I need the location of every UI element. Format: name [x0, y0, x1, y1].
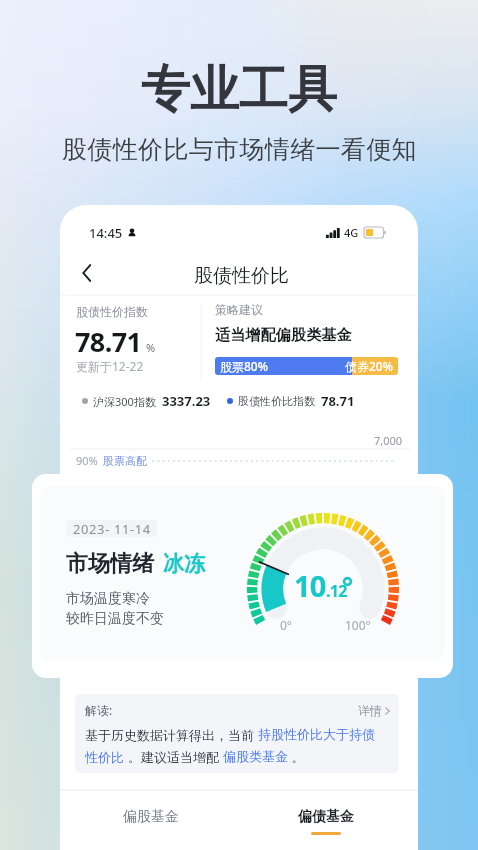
staticText: 股票80% [220, 358, 268, 374]
staticText: 股债性价指数 [76, 304, 148, 319]
staticText: % [146, 340, 156, 355]
staticText: 详情 [358, 703, 382, 718]
button[interactable]: 详情 [358, 703, 390, 718]
button[interactable]: Back [70, 257, 104, 289]
staticText: 偏股类基金 [223, 748, 288, 764]
staticText: 4G [344, 225, 359, 240]
staticText: 股债性价比 [194, 264, 289, 288]
staticText: 债券20% [345, 358, 393, 374]
staticText: 性价比 [85, 748, 128, 766]
staticText: 股票高配 [103, 454, 147, 468]
staticText: 市场温度寒冷 [66, 590, 150, 608]
staticText: 偏股基金 [123, 808, 179, 826]
staticText: .12 [326, 580, 347, 602]
staticText: 股债性价比指数 [238, 394, 315, 408]
staticText: 市场情绪 [66, 550, 154, 578]
staticText: 适当增配偏股类基金 [215, 326, 352, 345]
staticText: 。 [288, 748, 305, 766]
staticText: 专业工具 [141, 59, 337, 121]
staticText: 100° [345, 617, 371, 633]
staticText: 解读: [85, 702, 113, 718]
staticText: 冰冻 [163, 551, 205, 577]
staticText: 较昨日温度不变 [66, 610, 164, 628]
staticText: 3337.23 [162, 392, 211, 410]
staticText: 持股性价比大于持债 [258, 726, 375, 742]
button[interactable]: 偏债基金 [276, 808, 376, 846]
staticText: 14:45 [89, 224, 123, 242]
staticText: 基于历史数据计算得出，当前 [85, 726, 258, 744]
staticText: 股债性价比与市场情绪一看便知 [62, 134, 417, 165]
staticText: 沪深300指数 [93, 394, 156, 409]
staticText: 10 [294, 566, 326, 605]
staticText: 偏债基金 [298, 808, 354, 826]
staticText: 90% [76, 453, 98, 468]
button[interactable]: 偏股基金 [102, 808, 199, 846]
staticText: 更新于12-22 [76, 358, 144, 374]
staticText: 策略建议 [215, 302, 263, 317]
staticText: 78.71 [75, 323, 142, 360]
staticText: 2023- 11-14 [73, 520, 151, 537]
staticText: 0° [280, 617, 293, 633]
staticText: 。建议适当增配 [128, 748, 223, 766]
staticText: 7,000 [374, 433, 403, 448]
staticText: 78.71 [321, 392, 355, 410]
